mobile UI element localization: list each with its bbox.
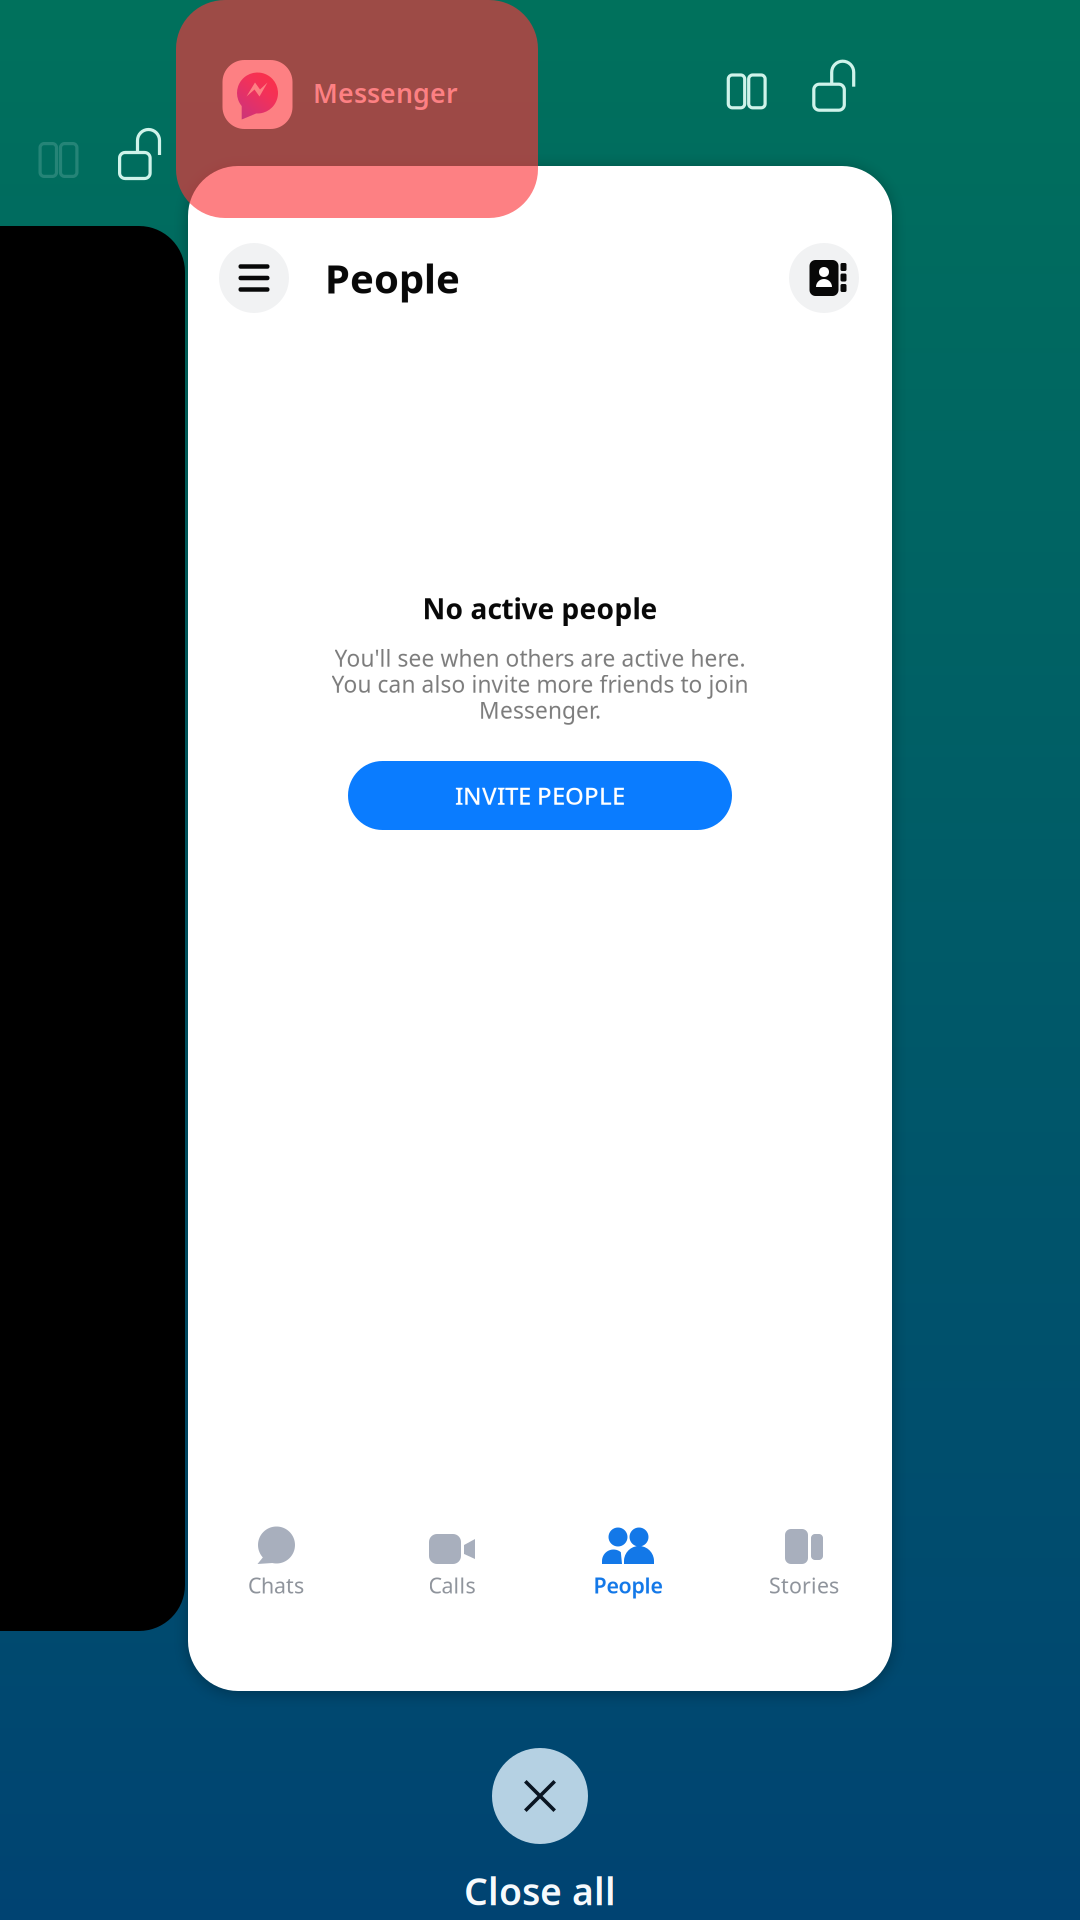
button[interactable]: Stories (716, 1526, 892, 1599)
staticText: You'll see when others are active here. (334, 643, 745, 673)
staticText: People (593, 1571, 662, 1599)
staticText: Stories (769, 1571, 839, 1599)
button[interactable]: INVITE PEOPLE (348, 761, 732, 830)
staticText: Messenger (313, 75, 458, 110)
button[interactable]: Close all (492, 1748, 588, 1844)
staticText: Calls (428, 1571, 475, 1599)
staticText: INVITE PEOPLE (455, 780, 625, 811)
staticText: People (325, 251, 460, 304)
button[interactable]: Lock app (812, 60, 855, 112)
staticText: Chats (248, 1571, 304, 1599)
button[interactable]: Contacts (789, 243, 859, 313)
button[interactable]: Calls (364, 1526, 540, 1599)
staticText: You can also invite more friends to join (331, 669, 748, 699)
button[interactable]: Split screen (727, 73, 767, 109)
button[interactable]: Chats (188, 1526, 364, 1599)
staticText: Messenger. (479, 695, 601, 725)
button[interactable]: Menu (219, 243, 289, 313)
button[interactable]: People (540, 1526, 716, 1599)
staticText: Close all (464, 1866, 616, 1916)
staticText: No active people (422, 590, 657, 627)
